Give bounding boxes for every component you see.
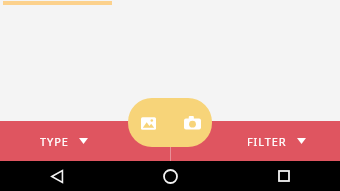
button[interactable]: TYPE <box>0 121 128 161</box>
button[interactable]: Choose photo <box>128 98 212 147</box>
button[interactable]: FILTER <box>212 121 340 161</box>
staticText: FILTER <box>247 134 287 149</box>
button[interactable]: Home <box>114 161 227 191</box>
button[interactable]: Choose photo <box>135 110 161 136</box>
button[interactable]: Take photo <box>179 110 205 136</box>
button[interactable]: Recent apps <box>227 161 340 191</box>
staticText: TYPE <box>40 134 69 149</box>
button[interactable]: Back <box>0 161 114 191</box>
